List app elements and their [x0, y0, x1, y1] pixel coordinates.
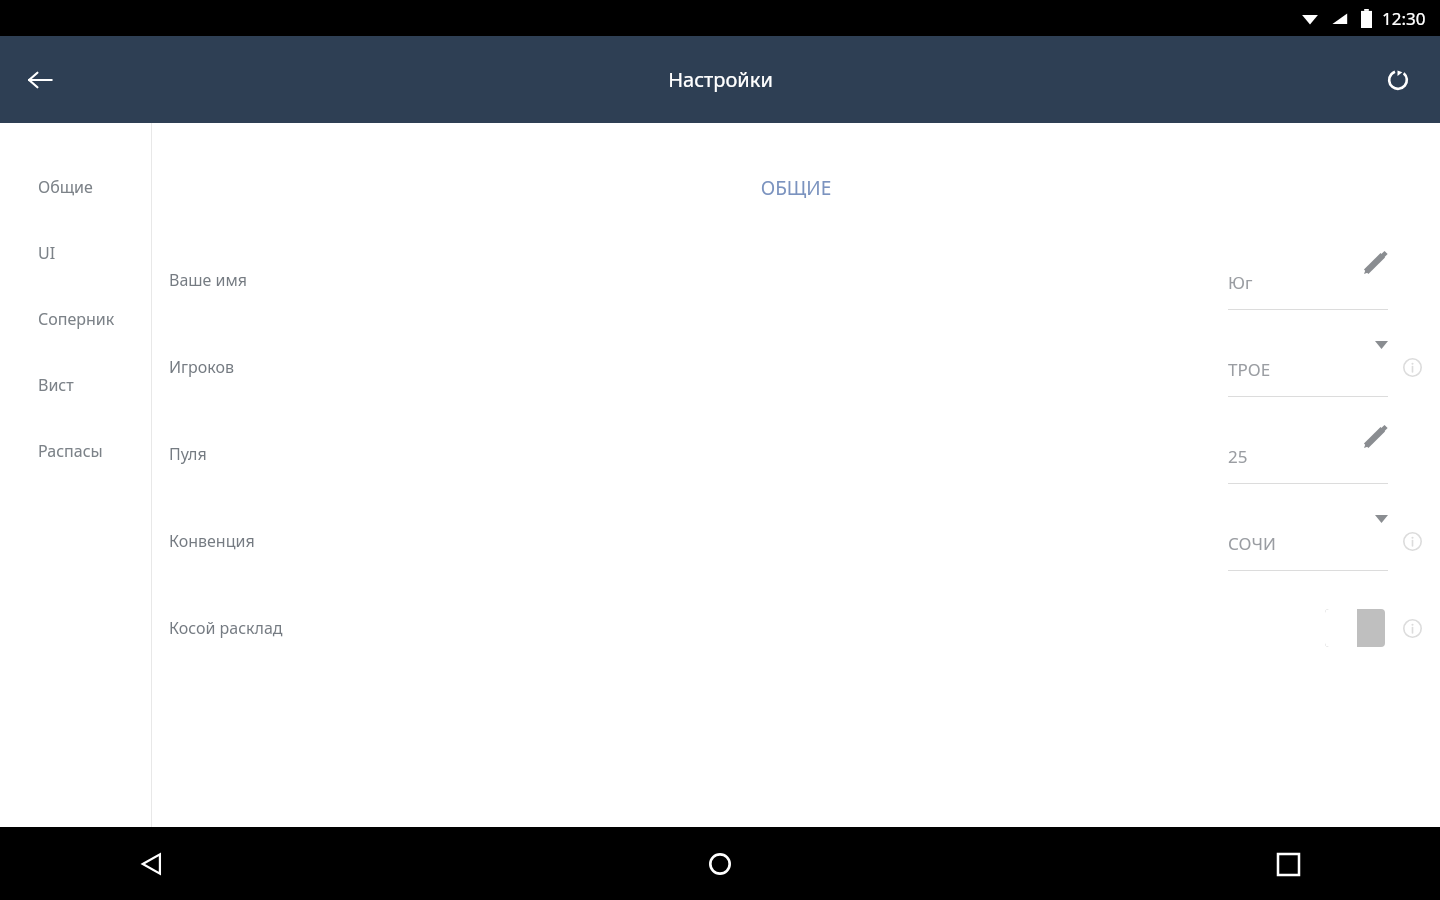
button[interactable]: Info about Конвенция [1394, 523, 1430, 559]
button[interactable]: Игроков [152, 323, 1440, 410]
staticText: Соперник [38, 308, 115, 330]
button[interactable]: Recent apps [1256, 832, 1320, 896]
button[interactable]: Общие [0, 159, 151, 214]
button[interactable]: Вист [0, 357, 151, 412]
staticText: Общие [38, 176, 93, 198]
button[interactable]: Home [688, 832, 752, 896]
staticText: Распасы [38, 440, 103, 462]
staticText: Косой расклад [169, 617, 283, 639]
staticText: Вист [38, 374, 74, 396]
staticText: Настройки [668, 66, 773, 93]
button[interactable]: Reset to defaults [1372, 54, 1424, 106]
button[interactable]: UI [0, 225, 151, 280]
button[interactable]: Info about Игроков [1394, 349, 1430, 385]
button[interactable]: Соперник [0, 291, 151, 346]
button[interactable]: Пуля [152, 410, 1440, 497]
staticText: ОБЩИЕ [152, 175, 1440, 201]
staticText: Ваше имя [169, 269, 248, 291]
staticText: UI [38, 242, 56, 264]
staticText: Конвенция [169, 530, 255, 552]
button[interactable]: Конвенция [152, 497, 1440, 584]
staticText: Юг [1228, 271, 1253, 294]
button[interactable]: Распасы [0, 423, 151, 478]
staticText: СОЧИ [1228, 532, 1276, 555]
staticText: Игроков [169, 356, 235, 378]
button[interactable]: Косой расклад toggle [1325, 609, 1385, 647]
button[interactable]: Back [14, 54, 66, 106]
staticText: ТРОЕ [1228, 358, 1271, 381]
button[interactable]: Косой расклад [152, 584, 1440, 671]
button[interactable]: Info about Косой расклад [1394, 610, 1430, 646]
staticText: Пуля [169, 443, 207, 465]
staticText: 25 [1228, 445, 1248, 468]
button[interactable]: Back [120, 832, 184, 896]
staticText: 12:30 [1382, 7, 1426, 30]
button[interactable]: Ваше имя [152, 236, 1440, 323]
